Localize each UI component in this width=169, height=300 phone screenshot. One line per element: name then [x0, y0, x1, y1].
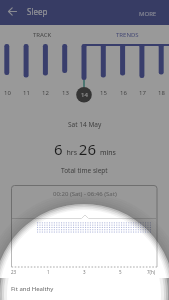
staticText: TRENDS: [116, 31, 139, 39]
button[interactable]: Fit and Healthy: [11, 283, 81, 295]
staticText: 7(h): [147, 269, 156, 275]
staticText: MORE: [139, 10, 157, 18]
staticText: 6 hrs 26 mins: [54, 139, 116, 157]
button[interactable]: 11: [16, 86, 36, 99]
staticText: 10: [4, 89, 11, 97]
staticText: Total time slept: [61, 166, 108, 175]
staticText: Fit and Healthy: [11, 285, 54, 293]
staticText: 18: [158, 89, 165, 97]
staticText: Sleep: [27, 6, 48, 17]
staticText: 16: [120, 89, 127, 97]
staticText: 11: [23, 89, 30, 97]
staticText: 12: [42, 89, 49, 97]
button[interactable]: 17: [132, 86, 152, 99]
button[interactable]: [11, 185, 158, 279]
staticText: 14: [81, 91, 88, 99]
staticText: Sat 14 May: [68, 120, 102, 129]
staticText: 00:20 (Sat) - 06:46 (Sat): [53, 190, 117, 198]
staticText: 15: [100, 89, 107, 97]
button[interactable]: 18: [151, 86, 169, 99]
button[interactable]: TRENDS: [85, 25, 169, 44]
button[interactable]: 13: [55, 86, 75, 99]
button[interactable]: MORE: [132, 7, 164, 21]
staticText: 23: [11, 269, 17, 275]
staticText: 3: [83, 269, 86, 275]
staticText: 17: [139, 89, 146, 97]
button[interactable]: [4, 3, 20, 19]
staticText: TRACK: [33, 31, 52, 39]
button[interactable]: TRACK: [0, 25, 84, 44]
button[interactable]: 16: [113, 86, 133, 99]
button[interactable]: 12: [35, 86, 55, 99]
button[interactable]: 15: [93, 86, 113, 99]
button[interactable]: 10: [0, 86, 17, 99]
staticText: 5: [119, 269, 122, 275]
staticText: 13: [62, 89, 69, 97]
staticText: 1: [47, 269, 50, 275]
